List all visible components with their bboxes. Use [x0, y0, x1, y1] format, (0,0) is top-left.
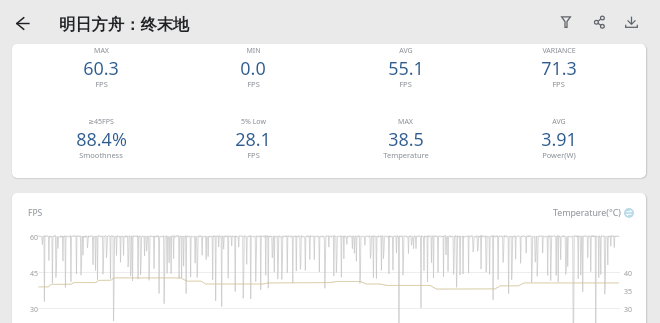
staticText: MAX — [398, 117, 413, 127]
staticText: 35 — [624, 287, 633, 297]
staticText: 40 — [624, 269, 633, 279]
staticText: MAX — [94, 46, 109, 56]
staticText: FPS — [28, 207, 43, 219]
staticText: 38.5 — [388, 127, 424, 152]
other: Switch metric — [624, 208, 634, 218]
staticText: MIN — [246, 46, 261, 56]
staticText: FPS — [247, 79, 260, 89]
staticText: 60.3 — [83, 56, 119, 81]
staticText: VARIANCE — [542, 46, 576, 56]
staticText: FPS — [552, 79, 565, 89]
button[interactable]: Temperature(°C) — [553, 207, 634, 219]
staticText: AVG — [399, 46, 413, 56]
staticText: Temperature — [383, 150, 429, 160]
staticText: AVG — [552, 117, 566, 127]
staticText: 45 — [30, 269, 39, 279]
staticText: FPS — [95, 79, 108, 89]
staticText: FPS — [247, 150, 260, 160]
button[interactable]: Filter — [549, 0, 582, 44]
staticText: ≥45FPS — [88, 117, 114, 127]
button[interactable]: Share — [582, 0, 615, 44]
staticText: 28.1 — [235, 127, 271, 152]
staticText: 30 — [30, 305, 39, 315]
staticText: 5% Low — [241, 117, 266, 127]
staticText: 71.3 — [541, 56, 577, 81]
staticText: Smoothness — [79, 150, 123, 160]
staticText: 60 — [30, 233, 39, 243]
staticText: 88.4% — [76, 127, 127, 152]
button[interactable]: Download — [615, 0, 648, 44]
staticText: 3.91 — [541, 127, 577, 152]
button[interactable]: Back — [0, 0, 44, 44]
staticText: Temperature(°C) — [553, 207, 621, 219]
staticText: 30 — [624, 305, 633, 315]
staticText: Power(W) — [542, 150, 576, 160]
staticText: 明日方舟：终末地 — [59, 14, 190, 35]
staticText: 55.1 — [388, 56, 424, 81]
staticText: 0.0 — [240, 56, 266, 81]
staticText: FPS — [399, 79, 412, 89]
